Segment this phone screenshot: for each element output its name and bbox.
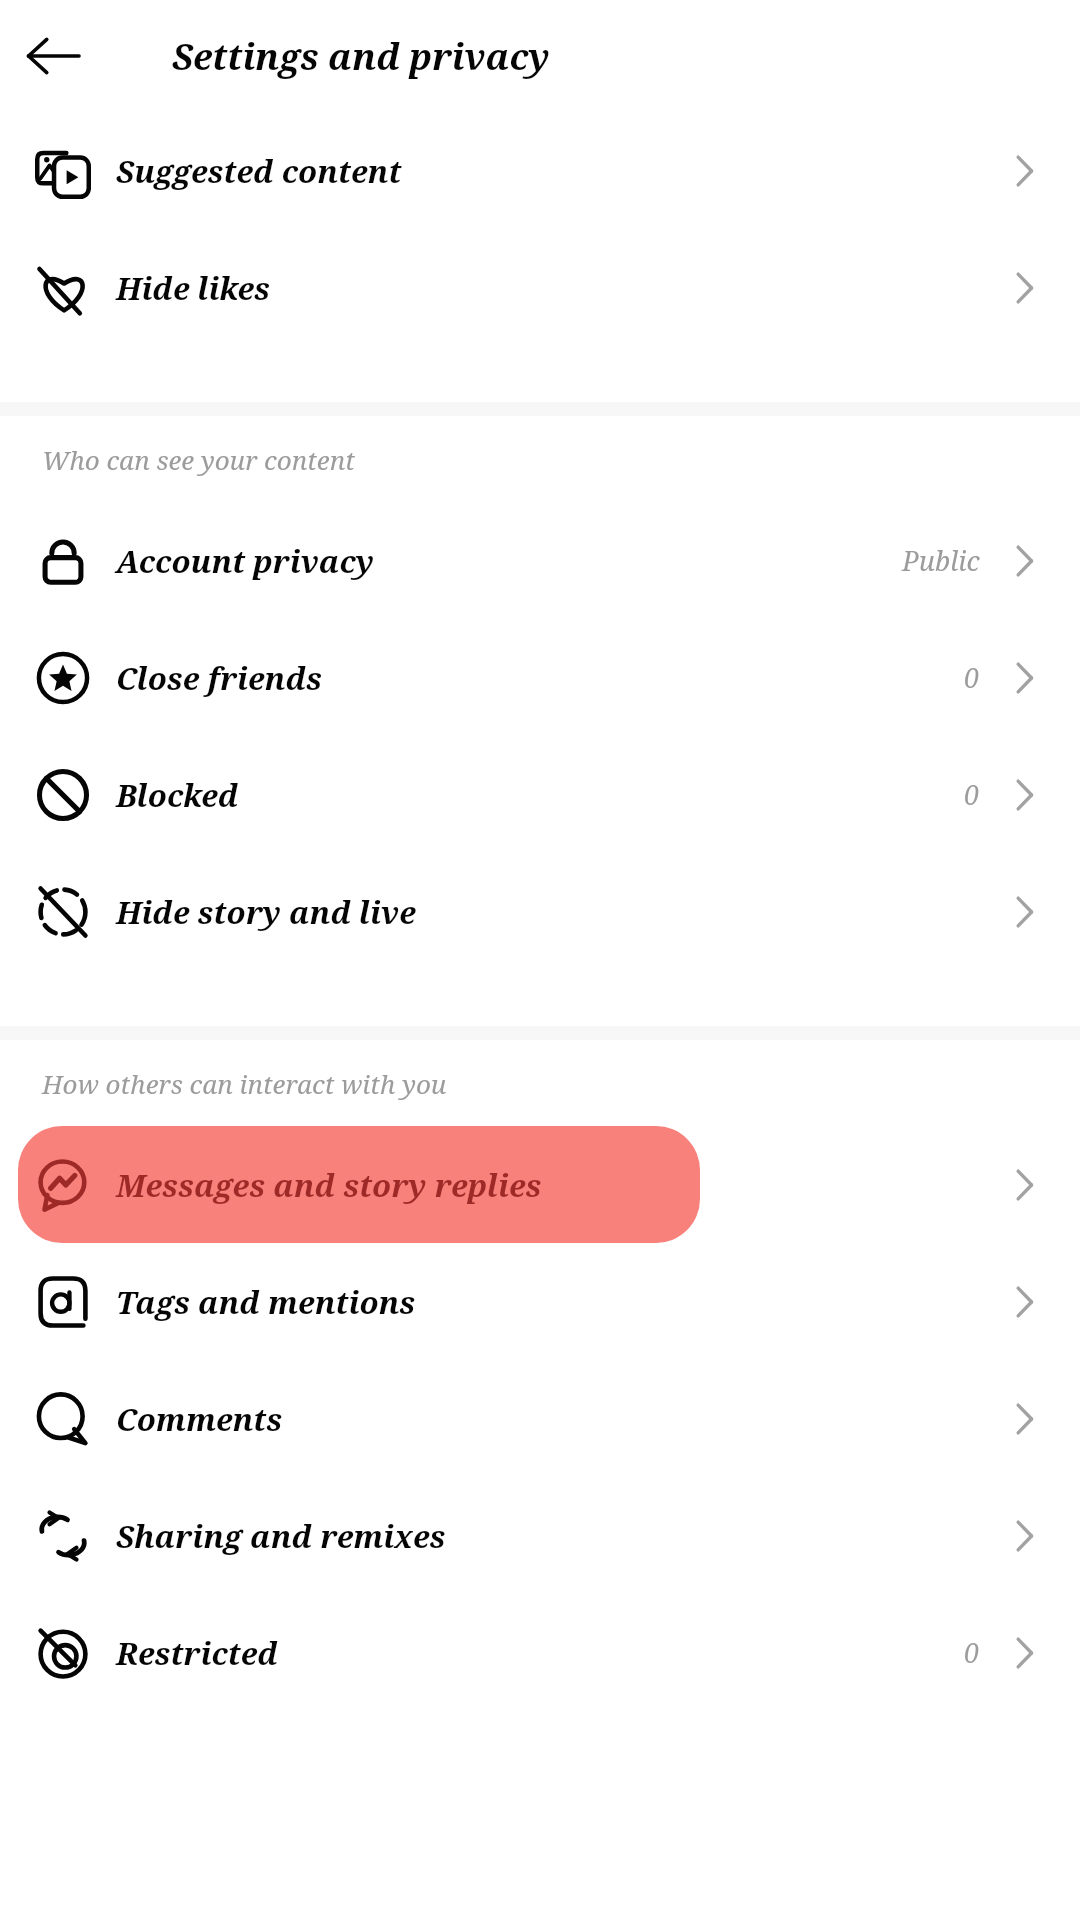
staticText: Hide story and live: [116, 891, 416, 933]
button[interactable]: Hide likes: [0, 229, 1080, 346]
button[interactable]: Blocked: [0, 736, 1080, 853]
staticText: Blocked: [116, 774, 239, 816]
button[interactable]: Suggested content: [998, 145, 1050, 197]
button[interactable]: Restricted: [998, 1627, 1050, 1679]
button[interactable]: Account privacy: [0, 502, 1080, 619]
button[interactable]: Hide likes: [998, 262, 1050, 314]
staticText: 0: [964, 1634, 980, 1671]
button[interactable]: Sharing and remixes: [0, 1477, 1080, 1594]
staticText: Messages and story replies: [116, 1164, 542, 1206]
staticText: Tags and mentions: [116, 1281, 416, 1323]
button[interactable]: Suggested content: [0, 112, 1080, 229]
button[interactable]: Sharing and remixes: [998, 1510, 1050, 1562]
button[interactable]: Close friends: [0, 619, 1080, 736]
staticText: Who can see your content: [42, 442, 355, 477]
button[interactable]: Messages and story replies: [18, 1126, 700, 1243]
button[interactable]: Close friends: [998, 652, 1050, 704]
staticText: Settings and privacy: [172, 32, 550, 81]
staticText: How others can interact with you: [42, 1066, 447, 1101]
button[interactable]: Hide story and live: [0, 853, 1080, 970]
button[interactable]: Comments: [0, 1360, 1080, 1477]
button[interactable]: Back: [14, 17, 92, 95]
button[interactable]: Account privacy: [998, 535, 1050, 587]
staticText: Hide likes: [116, 267, 270, 309]
button[interactable]: Restricted: [0, 1594, 1080, 1711]
staticText: Comments: [116, 1398, 283, 1440]
staticText: Close friends: [116, 657, 322, 699]
button[interactable]: Hide story and live: [998, 886, 1050, 938]
staticText: 0: [964, 659, 980, 696]
staticText: Account privacy: [116, 540, 374, 582]
staticText: 0: [964, 776, 980, 813]
staticText: Sharing and remixes: [116, 1515, 446, 1557]
staticText: Restricted: [116, 1632, 278, 1674]
button[interactable]: Tags and mentions: [998, 1276, 1050, 1328]
staticText: Suggested content: [116, 150, 402, 192]
button[interactable]: Comments: [998, 1393, 1050, 1445]
button[interactable]: Tags and mentions: [0, 1243, 1080, 1360]
button[interactable]: Messages and story replies: [998, 1159, 1050, 1211]
button[interactable]: Blocked: [998, 769, 1050, 821]
staticText: Public: [902, 542, 980, 579]
